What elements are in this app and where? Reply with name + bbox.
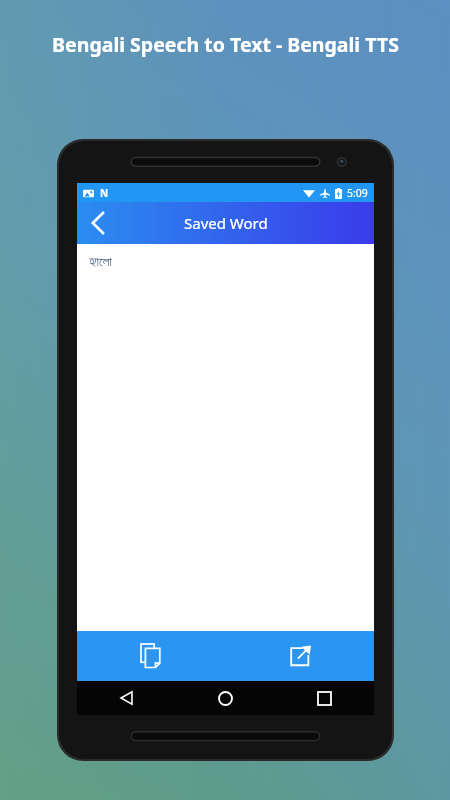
button[interactable]: Copy	[77, 631, 225, 681]
staticText: Bengali Speech to Text - Bengali TTS	[52, 31, 399, 58]
button[interactable]: Home	[176, 681, 275, 715]
button[interactable]: হ্যালো	[89, 256, 112, 269]
staticText: হ্যালো	[89, 256, 112, 269]
staticText: N	[100, 186, 109, 200]
button[interactable]: Back	[77, 681, 176, 715]
button[interactable]: Recent apps	[275, 681, 374, 715]
staticText: Saved Word	[184, 213, 268, 233]
button[interactable]: Share	[225, 631, 374, 681]
staticText: 5:09	[347, 186, 368, 200]
button[interactable]: Back	[77, 202, 119, 244]
